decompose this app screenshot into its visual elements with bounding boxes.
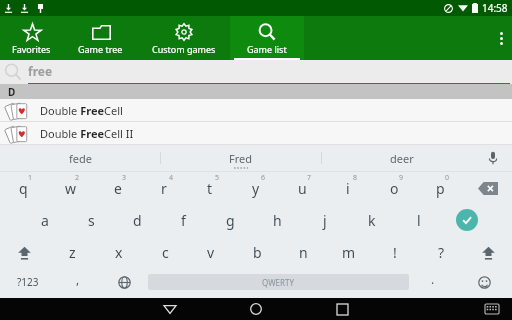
staticText: QWERTY	[262, 277, 295, 288]
button[interactable]: v	[188, 236, 234, 268]
button[interactable]: Emoji	[456, 268, 512, 296]
button[interactable]: q	[0, 172, 47, 204]
button[interactable]: Shift	[464, 236, 512, 268]
button[interactable]: k	[348, 204, 395, 236]
staticText: e	[114, 179, 122, 198]
button[interactable]: t	[187, 172, 233, 204]
button[interactable]: ?123	[0, 268, 55, 296]
staticText: t	[207, 179, 213, 198]
staticText: b	[253, 243, 262, 262]
button[interactable]: ,	[55, 268, 101, 296]
button[interactable]: Favorites	[0, 16, 62, 60]
staticText: fede	[69, 151, 92, 166]
staticText: n	[299, 243, 308, 262]
staticText: z	[69, 243, 76, 262]
staticText: Game list	[247, 43, 287, 55]
button[interactable]: Double FreeCell	[0, 99, 512, 122]
staticText: Fred	[229, 151, 253, 166]
button[interactable]: Hide keyboard	[482, 299, 502, 319]
button[interactable]: Backspace	[463, 172, 512, 204]
button[interactable]: Custom games	[138, 16, 230, 60]
staticText: 4	[169, 173, 174, 183]
staticText: h	[273, 211, 282, 230]
button[interactable]: QWERTY	[148, 274, 409, 290]
button[interactable]: !	[372, 236, 418, 268]
button[interactable]: Voice input	[484, 149, 502, 167]
button[interactable]: Recent apps	[325, 298, 359, 320]
button[interactable]: n	[280, 236, 326, 268]
staticText: deer	[390, 151, 414, 166]
staticText: 14:58	[482, 1, 508, 15]
staticText: u	[298, 179, 307, 198]
staticText: 2	[75, 173, 80, 183]
button[interactable]: x	[96, 236, 142, 268]
button[interactable]: Enter	[442, 204, 491, 236]
staticText: s	[88, 211, 95, 230]
button[interactable]: .	[409, 268, 456, 296]
staticText: 3	[122, 173, 127, 183]
button[interactable]: More options	[500, 32, 503, 45]
staticText: 9	[399, 173, 404, 183]
button[interactable]: l	[395, 204, 442, 236]
button[interactable]: z	[49, 236, 96, 268]
staticText: w	[65, 179, 77, 198]
button[interactable]: w	[47, 172, 94, 204]
staticText: Double FreeCell II	[40, 126, 134, 141]
button[interactable]: j	[301, 204, 348, 236]
staticText: 0	[445, 173, 450, 183]
staticText: o	[390, 179, 399, 198]
button[interactable]: b	[234, 236, 280, 268]
button[interactable]: s	[68, 204, 114, 236]
staticText: ,	[76, 271, 80, 287]
staticText: 1	[28, 173, 33, 183]
staticText: ?123	[17, 275, 39, 289]
staticText: g	[226, 211, 235, 230]
staticText: v	[207, 243, 215, 262]
button[interactable]: Back	[153, 298, 187, 320]
button[interactable]: Home	[239, 298, 273, 320]
staticText: 6	[261, 173, 266, 183]
button[interactable]: o	[371, 172, 417, 204]
staticText: k	[368, 211, 376, 230]
button[interactable]: e	[94, 172, 141, 204]
button[interactable]: deer	[322, 145, 482, 171]
staticText: ?	[438, 243, 445, 262]
staticText: q	[19, 179, 28, 198]
button[interactable]: p	[417, 172, 463, 204]
staticText: r	[161, 179, 167, 198]
button[interactable]: Game list	[230, 16, 304, 60]
button[interactable]: h	[254, 204, 301, 236]
staticText: d	[133, 211, 142, 230]
button[interactable]: g	[207, 204, 254, 236]
button[interactable]: d	[114, 204, 160, 236]
button[interactable]: Change keyboard	[101, 268, 148, 296]
button[interactable]: Shift	[0, 236, 49, 268]
staticText: !	[393, 243, 397, 262]
staticText: i	[346, 179, 350, 198]
button[interactable]: Game tree	[62, 16, 138, 60]
button[interactable]: f	[160, 204, 207, 236]
staticText: Custom games	[152, 43, 216, 55]
staticText: y	[252, 179, 260, 198]
button[interactable]: free	[28, 60, 512, 84]
staticText: j	[323, 211, 327, 230]
button[interactable]: u	[279, 172, 325, 204]
staticText: D	[8, 85, 16, 99]
button[interactable]: i	[325, 172, 371, 204]
button[interactable]: ?	[418, 236, 464, 268]
staticText: free	[28, 63, 53, 79]
button[interactable]: c	[142, 236, 188, 268]
button[interactable]: r	[141, 172, 187, 204]
button[interactable]: Fred	[161, 145, 321, 171]
staticText: p	[436, 179, 445, 198]
staticText: x	[115, 243, 123, 262]
staticText: Double FreeCell	[40, 103, 123, 118]
button[interactable]: y	[233, 172, 279, 204]
button[interactable]: a	[22, 204, 68, 236]
staticText: Game tree	[78, 43, 123, 55]
staticText: 8	[353, 173, 358, 183]
staticText: .	[431, 271, 435, 287]
button[interactable]: fede	[0, 145, 160, 171]
button[interactable]: m	[326, 236, 372, 268]
button[interactable]: Double FreeCell II	[0, 122, 512, 145]
